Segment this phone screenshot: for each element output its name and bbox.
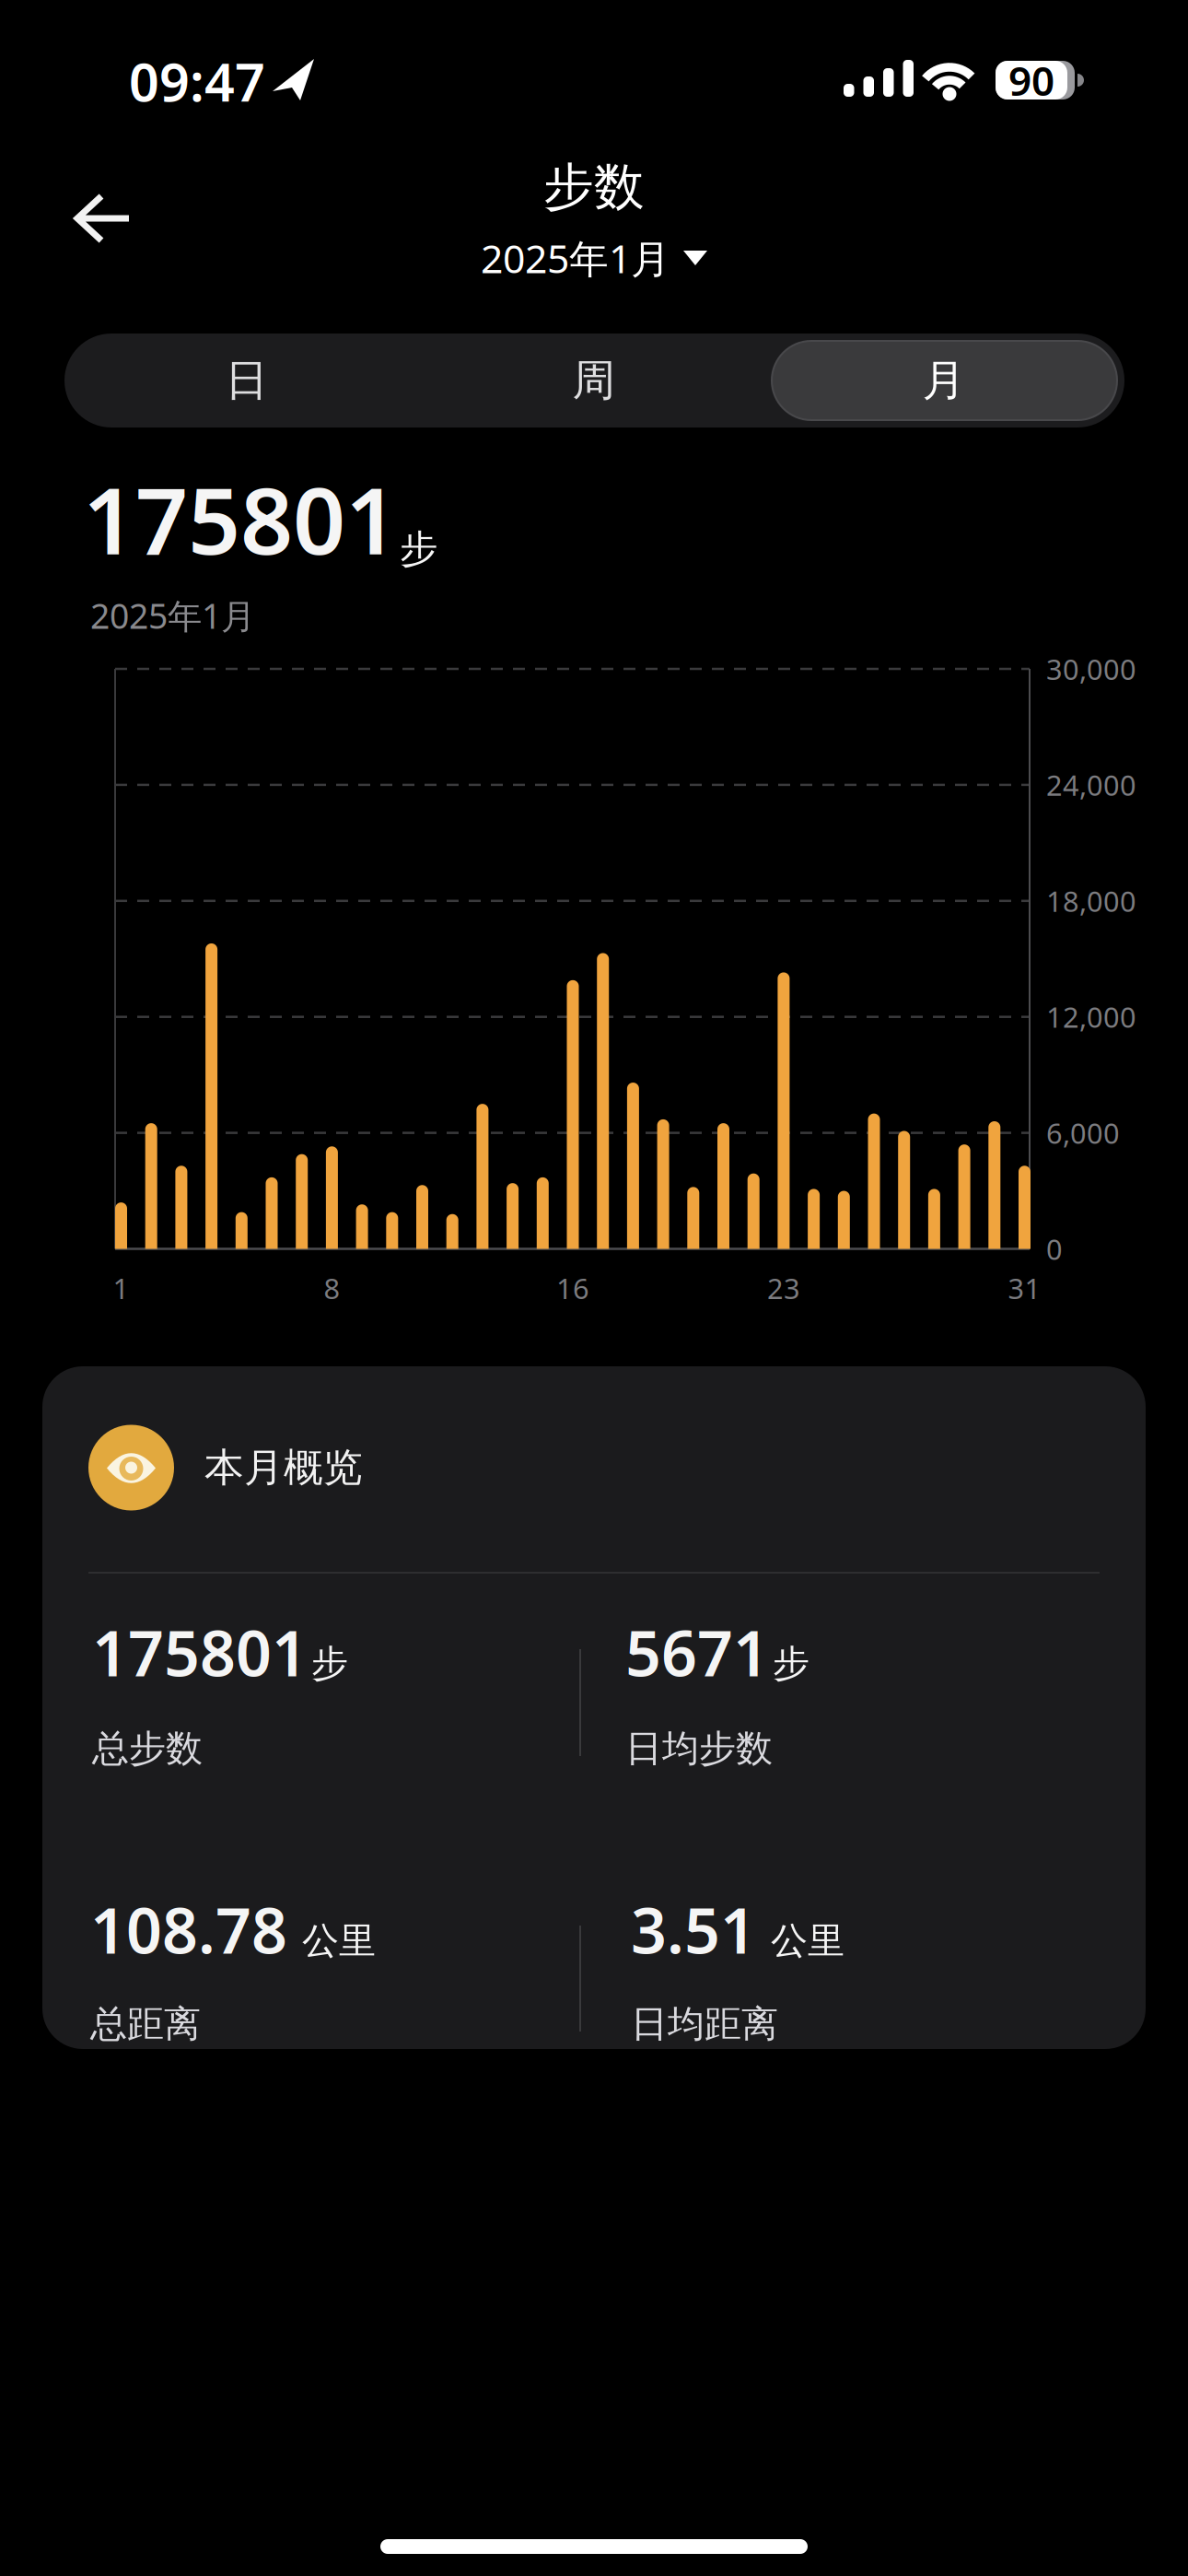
staticText: 1	[113, 1269, 129, 1307]
staticText: 总距离	[90, 2001, 201, 2047]
staticText: 12,000	[1046, 998, 1136, 1036]
staticText: 总步数	[92, 1726, 203, 1771]
staticText: 公里	[771, 1918, 844, 1963]
staticText: 本月概览	[204, 1444, 363, 1492]
staticText: 0	[1046, 1230, 1063, 1268]
button[interactable]: 月	[768, 334, 1120, 427]
staticText: 2025年1月	[90, 593, 255, 638]
staticText: 90	[1008, 53, 1054, 107]
staticText: 09:47	[129, 46, 265, 116]
staticText: 步	[773, 1641, 809, 1686]
staticText: 24,000	[1046, 766, 1136, 804]
staticText: 31	[1008, 1269, 1041, 1307]
staticText: 周	[572, 354, 616, 407]
button[interactable]: Select month	[481, 230, 707, 286]
staticText: 175801	[92, 1610, 308, 1693]
staticText: 23	[767, 1269, 800, 1307]
staticText: 步	[400, 526, 437, 573]
staticText: 30,000	[1046, 650, 1136, 688]
button[interactable]: Back	[70, 191, 136, 246]
staticText: 108.78	[90, 1888, 287, 1971]
staticText: 18,000	[1046, 882, 1136, 920]
staticText: 月	[922, 354, 966, 407]
staticText: 日均距离	[631, 2001, 778, 2047]
staticText: 2025年1月	[481, 232, 670, 284]
staticText: 8	[324, 1269, 340, 1307]
staticText: 6,000	[1046, 1114, 1120, 1152]
staticText: 16	[556, 1269, 589, 1307]
staticText: 日均步数	[625, 1726, 773, 1771]
button[interactable]: 日	[70, 334, 423, 427]
staticText: 3.51	[631, 1888, 756, 1971]
staticText: 公里	[302, 1918, 376, 1963]
staticText: 日	[225, 354, 268, 407]
button[interactable]: 周	[418, 334, 770, 427]
staticText: 5671	[625, 1610, 769, 1693]
staticText: 步	[311, 1641, 348, 1686]
staticText: 步数	[543, 156, 645, 218]
staticText: 175801	[83, 458, 398, 580]
